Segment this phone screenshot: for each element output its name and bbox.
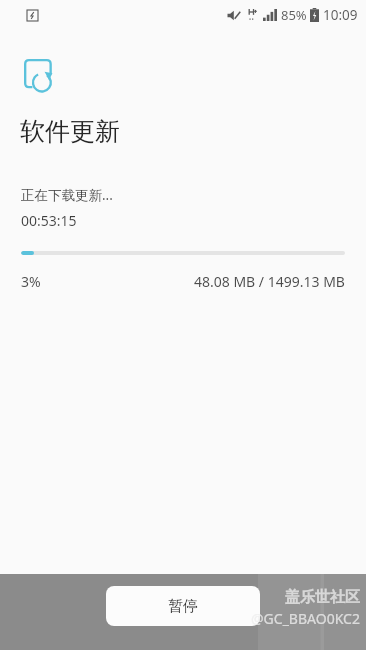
staticText: 10:09 — [323, 6, 358, 24]
staticText: 85% — [281, 6, 307, 24]
staticText: 48.08 MB / 1499.13 MB — [194, 272, 345, 291]
staticText: 3% — [21, 272, 41, 291]
staticText: 盖乐世社区 — [285, 588, 360, 607]
staticText: @GC_BBAO0KC2 — [251, 609, 360, 628]
staticText: 正在下载更新... — [21, 186, 113, 204]
button[interactable]: 暂停 — [106, 586, 260, 626]
staticText: 暂停 — [168, 597, 198, 616]
staticText: 软件更新 — [20, 116, 120, 147]
staticText: 00:53:15 — [21, 211, 77, 230]
